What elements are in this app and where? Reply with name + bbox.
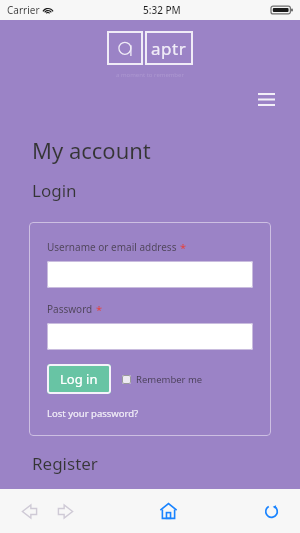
- staticText: Username or email address: [47, 240, 177, 254]
- staticText: Remember me: [136, 373, 203, 386]
- staticText: My account: [32, 135, 151, 165]
- staticText: Log in: [60, 370, 98, 388]
- button[interactable]: Lost your password?: [47, 407, 139, 420]
- staticText: *: [96, 302, 103, 317]
- staticText: Password: [47, 302, 93, 316]
- staticText: aptr: [151, 37, 187, 60]
- button[interactable]: Log in: [47, 364, 111, 394]
- staticText: *: [180, 240, 187, 255]
- staticText: Carrier: [7, 3, 40, 17]
- staticText: a moment to remember: [116, 71, 184, 79]
- button[interactable]: [47, 261, 253, 288]
- button[interactable]: [47, 323, 253, 350]
- staticText: Register: [32, 452, 98, 475]
- button[interactable]: Menu: [253, 87, 279, 111]
- button[interactable]: Home: [152, 495, 184, 527]
- button[interactable]: Forward: [50, 496, 80, 526]
- staticText: Login: [32, 179, 77, 202]
- button[interactable]: Reload: [256, 496, 286, 526]
- button[interactable]: Back: [14, 496, 44, 526]
- button[interactable]: Remember me: [122, 373, 203, 386]
- staticText: 5:32 PM: [143, 3, 181, 17]
